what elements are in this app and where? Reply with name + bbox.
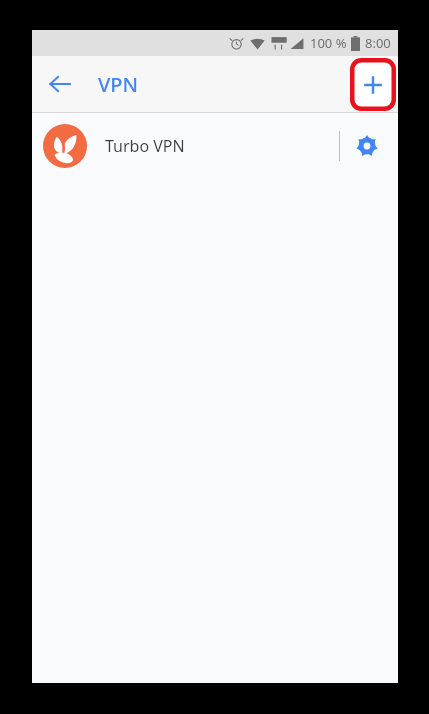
button[interactable]: VPN settings xyxy=(340,119,394,173)
staticText: VPN xyxy=(98,71,139,98)
button[interactable]: Turbo VPN xyxy=(32,113,398,179)
staticText: 100 % xyxy=(310,34,347,52)
staticText: 8:00 xyxy=(365,34,391,52)
button[interactable]: Back xyxy=(40,64,80,104)
button[interactable]: Add VPN profile xyxy=(350,58,396,111)
staticText: Turbo VPN xyxy=(105,135,185,157)
